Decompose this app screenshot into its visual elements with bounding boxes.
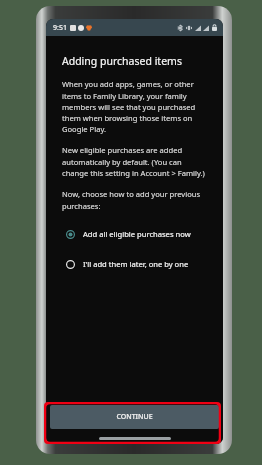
staticText: Add all eligible purchases now bbox=[83, 229, 191, 239]
button[interactable]: I'll add them later, one by one bbox=[62, 257, 209, 271]
staticText: When you add apps, games, or other items… bbox=[62, 79, 209, 134]
button[interactable]: Add all eligible purchases now bbox=[62, 227, 209, 241]
staticText: CONTINUE bbox=[116, 412, 153, 422]
staticText: 9:51 bbox=[53, 23, 67, 33]
staticText: Now, choose how to add your previous pur… bbox=[62, 189, 209, 211]
button[interactable]: CONTINUE bbox=[50, 405, 219, 429]
staticText: Adding purchased items bbox=[62, 54, 182, 68]
staticText: New eligible purchases are added automat… bbox=[62, 145, 209, 178]
staticText: I'll add them later, one by one bbox=[83, 259, 189, 269]
